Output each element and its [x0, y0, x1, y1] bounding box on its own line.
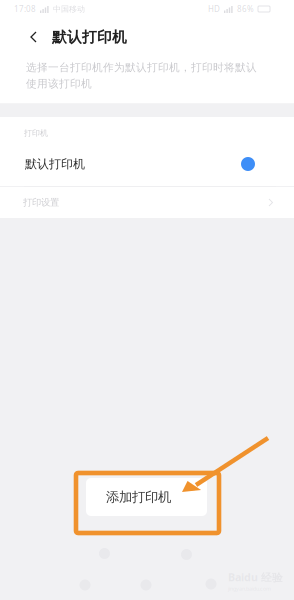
staticText: Baidu 经验 — [228, 570, 283, 584]
staticText: 打印机 — [24, 128, 48, 138]
button[interactable]: 打印设置 — [0, 187, 294, 218]
staticText: 默认打印机 — [25, 157, 85, 171]
staticText: 使用该打印机 — [26, 77, 92, 90]
button[interactable]: 添加打印机 — [86, 478, 207, 516]
button[interactable]: 默认打印机 — [0, 142, 294, 186]
staticText: 86% — [237, 4, 254, 14]
staticText: 打印设置 — [23, 197, 59, 208]
staticText: 默认打印机 — [52, 28, 127, 46]
button[interactable]: 默认打印机 — [0, 18, 294, 56]
staticText: 中国移动 — [53, 4, 85, 14]
staticText: 17:08 — [14, 4, 36, 14]
staticText: 选择一台打印机作为默认打印机，打印时将默认 — [26, 61, 257, 74]
staticText: 添加打印机 — [106, 489, 171, 505]
staticText: HD — [208, 4, 220, 14]
